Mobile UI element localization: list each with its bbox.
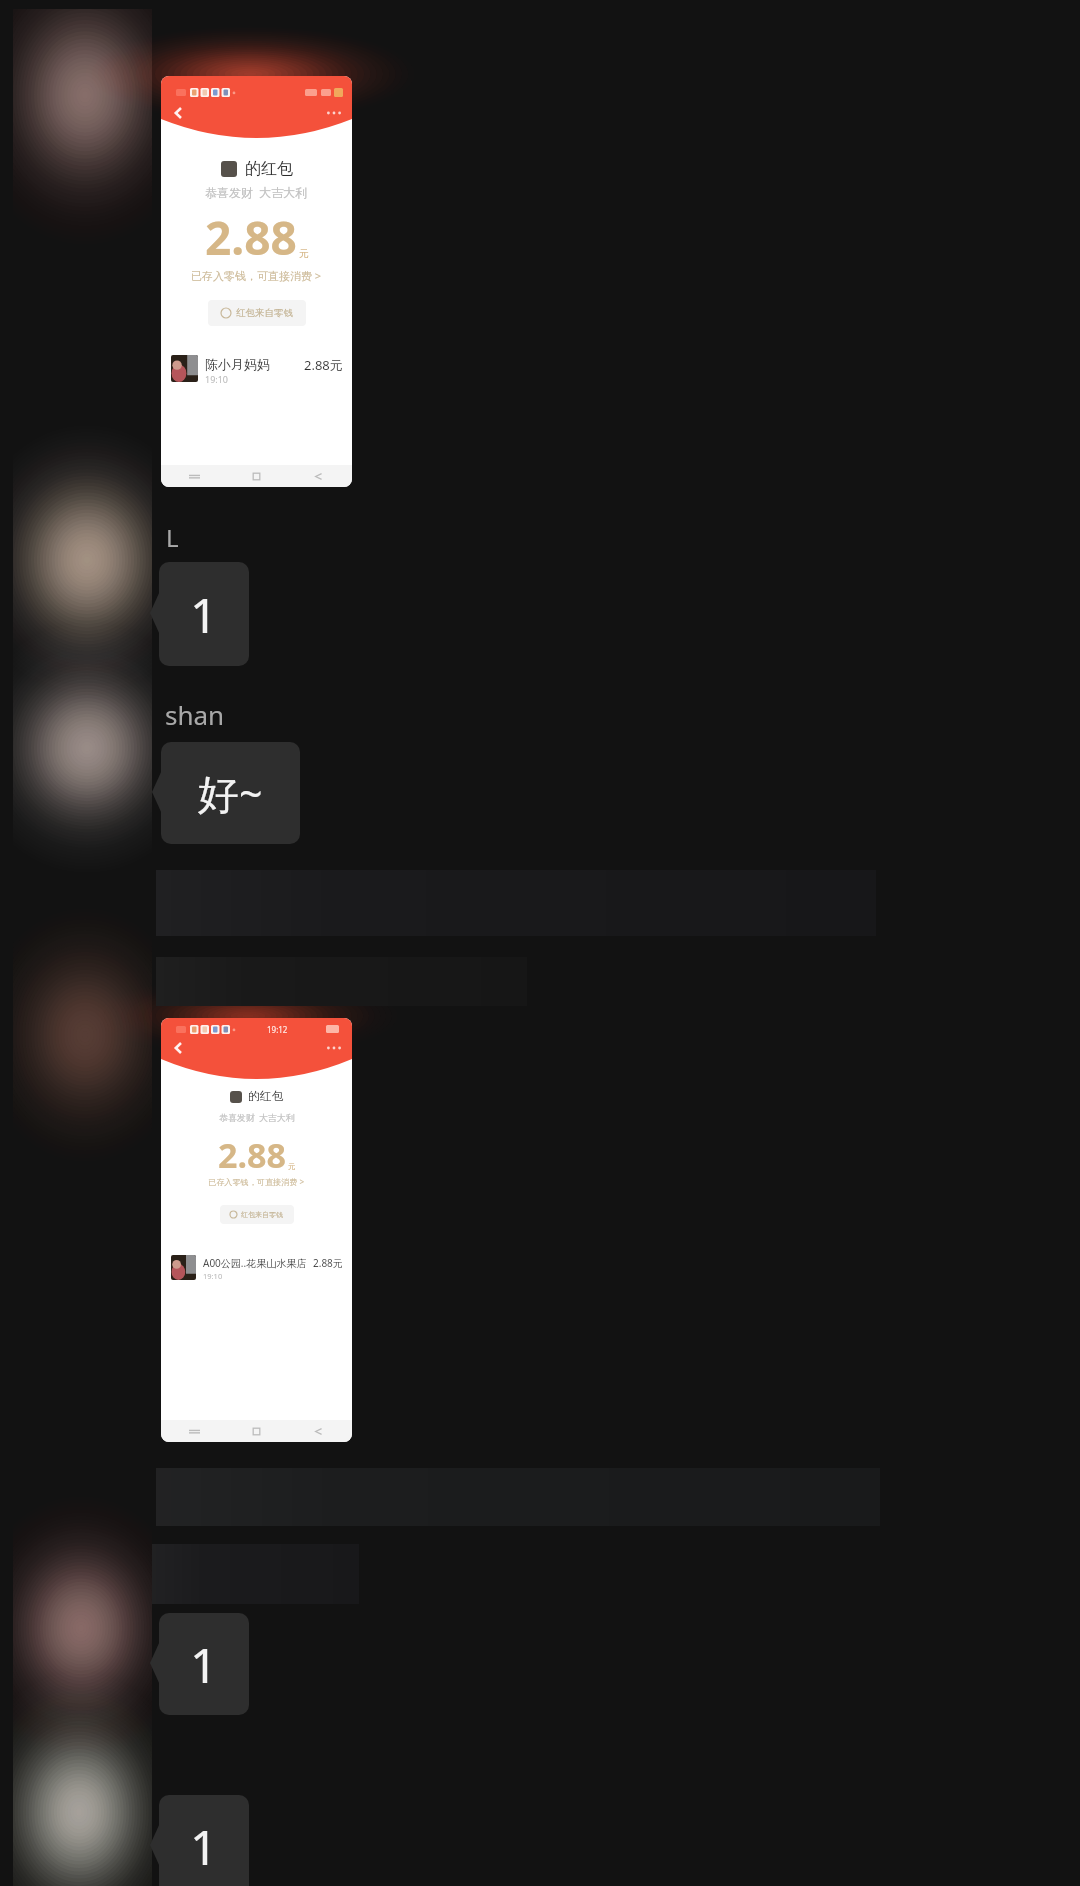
button[interactable]: 红包来自零钱: [230, 1210, 284, 1219]
staticText: 恭喜发财 大吉大利: [219, 1112, 295, 1124]
staticText: 19:10: [203, 1271, 223, 1281]
staticText: 红包来自零钱: [236, 307, 293, 319]
button[interactable]: 1: [159, 1795, 249, 1886]
staticText: 已存入零钱，可直接消费 >: [191, 268, 322, 283]
staticText: 2.88: [218, 1132, 286, 1178]
button[interactable]: More: [324, 1038, 344, 1058]
button[interactable]: 1: [159, 1613, 249, 1715]
staticText: 1: [190, 582, 218, 647]
staticText: 的红包: [248, 1089, 284, 1104]
button[interactable]: 1: [159, 562, 249, 666]
staticText: A00公园..花果山水果店1…: [203, 1256, 310, 1270]
staticText: L: [166, 521, 179, 554]
button[interactable]: Back: [169, 1038, 189, 1058]
button[interactable]: Back: [169, 103, 189, 123]
staticText: shan: [165, 697, 225, 732]
staticText: 元: [299, 247, 309, 260]
staticText: 1: [190, 1632, 218, 1697]
staticText: 19:12: [267, 1024, 288, 1035]
staticText: 元: [288, 1162, 296, 1171]
staticText: 2.88元: [304, 356, 343, 374]
staticText: 2.88: [205, 206, 297, 269]
staticText: 19:10: [205, 373, 229, 385]
staticText: 的红包: [245, 159, 293, 179]
button[interactable]: Red packet screenshot: [161, 76, 352, 487]
staticText: 好~: [198, 765, 263, 821]
staticText: 红包来自零钱: [241, 1210, 284, 1219]
staticText: 恭喜发财 大吉大利: [205, 184, 308, 200]
button[interactable]: Red packet screenshot: [161, 1018, 352, 1442]
staticText: 已存入零钱，可直接消费 >: [208, 1176, 305, 1187]
button[interactable]: 好~: [161, 742, 300, 844]
button[interactable]: More: [324, 103, 344, 123]
button[interactable]: 红包来自零钱: [221, 307, 293, 319]
staticText: 2.88元: [313, 1256, 343, 1270]
staticText: 陈小月妈妈: [205, 356, 270, 372]
staticText: 1: [190, 1814, 218, 1879]
